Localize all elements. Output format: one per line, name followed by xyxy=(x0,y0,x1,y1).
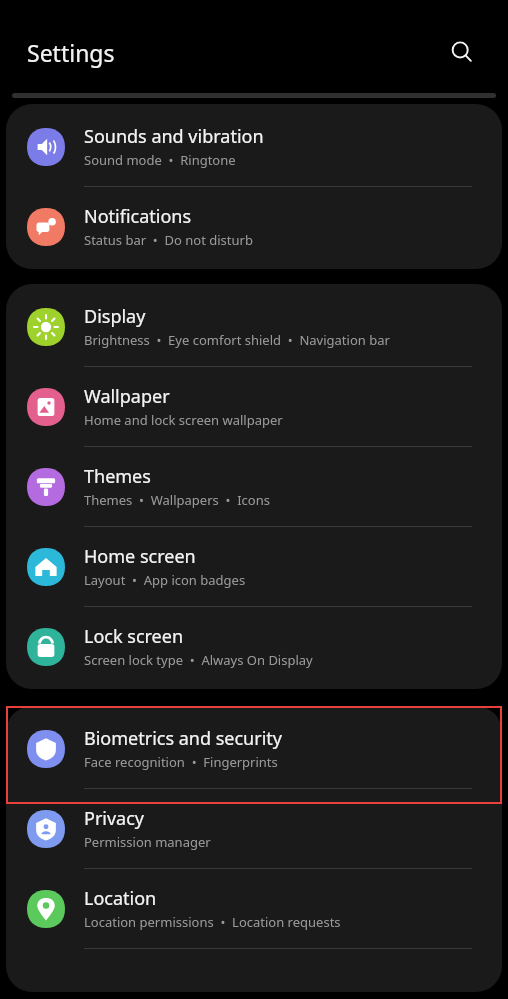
staticText: Wallpaper xyxy=(84,384,170,409)
staticText: Home screen xyxy=(84,544,196,569)
button[interactable]: Biometrics and security xyxy=(6,709,502,789)
staticText: Sounds and vibration xyxy=(84,124,264,149)
staticText: Home and lock screen wallpaper xyxy=(84,411,283,429)
staticText: Biometrics and security xyxy=(84,726,282,751)
staticText: Notifications xyxy=(84,204,192,229)
button[interactable]: Search xyxy=(438,28,486,76)
staticText: Status bar • Do not disturb xyxy=(84,231,253,249)
button[interactable]: Lock screen xyxy=(6,607,502,686)
staticText: Themes • Wallpapers • Icons xyxy=(84,491,270,509)
button[interactable]: Wallpaper xyxy=(6,367,502,447)
button[interactable]: Notifications xyxy=(6,187,502,266)
staticText: Screen lock type • Always On Display xyxy=(84,651,313,669)
button[interactable]: Home screen xyxy=(6,527,502,607)
staticText: Location permissions • Location requests xyxy=(84,913,341,931)
button[interactable]: Location xyxy=(6,869,502,949)
staticText: Face recognition • Fingerprints xyxy=(84,753,278,771)
staticText: Privacy xyxy=(84,806,145,831)
button[interactable]: Sounds and vibration xyxy=(6,107,502,187)
button[interactable]: Display xyxy=(6,287,502,367)
staticText: Settings xyxy=(27,37,115,68)
staticText: Themes xyxy=(84,464,151,489)
staticText: Sound mode • Ringtone xyxy=(84,151,236,169)
staticText: Brightness • Eye comfort shield • Naviga… xyxy=(84,331,390,349)
staticText: Location xyxy=(84,886,157,911)
staticText: Permission manager xyxy=(84,833,211,851)
staticText: Display xyxy=(84,304,146,329)
button[interactable]: Themes xyxy=(6,447,502,527)
button[interactable]: Privacy xyxy=(6,789,502,869)
staticText: Lock screen xyxy=(84,624,184,649)
staticText: Layout • App icon badges xyxy=(84,571,246,589)
